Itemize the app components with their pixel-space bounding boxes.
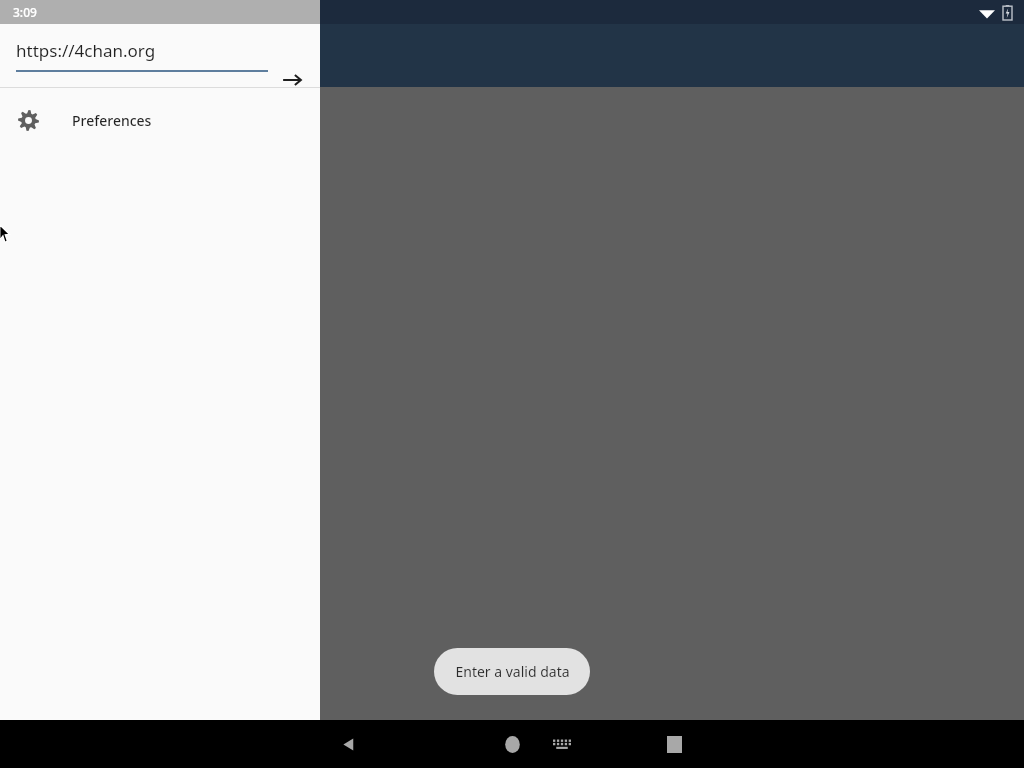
- button[interactable]: Back: [325, 720, 373, 768]
- button[interactable]: Go: [274, 62, 310, 98]
- staticText: Enter a valid data: [455, 662, 570, 681]
- staticText: Preferences: [72, 111, 152, 130]
- button[interactable]: Switch keyboard: [538, 720, 586, 768]
- button[interactable]: Preferences: [0, 88, 320, 152]
- button[interactable]: https://4chan.org: [16, 38, 268, 72]
- staticText: https://4chan.org: [16, 39, 156, 62]
- button[interactable]: Recent apps: [650, 720, 698, 768]
- button[interactable]: Home: [488, 720, 536, 768]
- staticText: 3:09: [13, 4, 37, 20]
